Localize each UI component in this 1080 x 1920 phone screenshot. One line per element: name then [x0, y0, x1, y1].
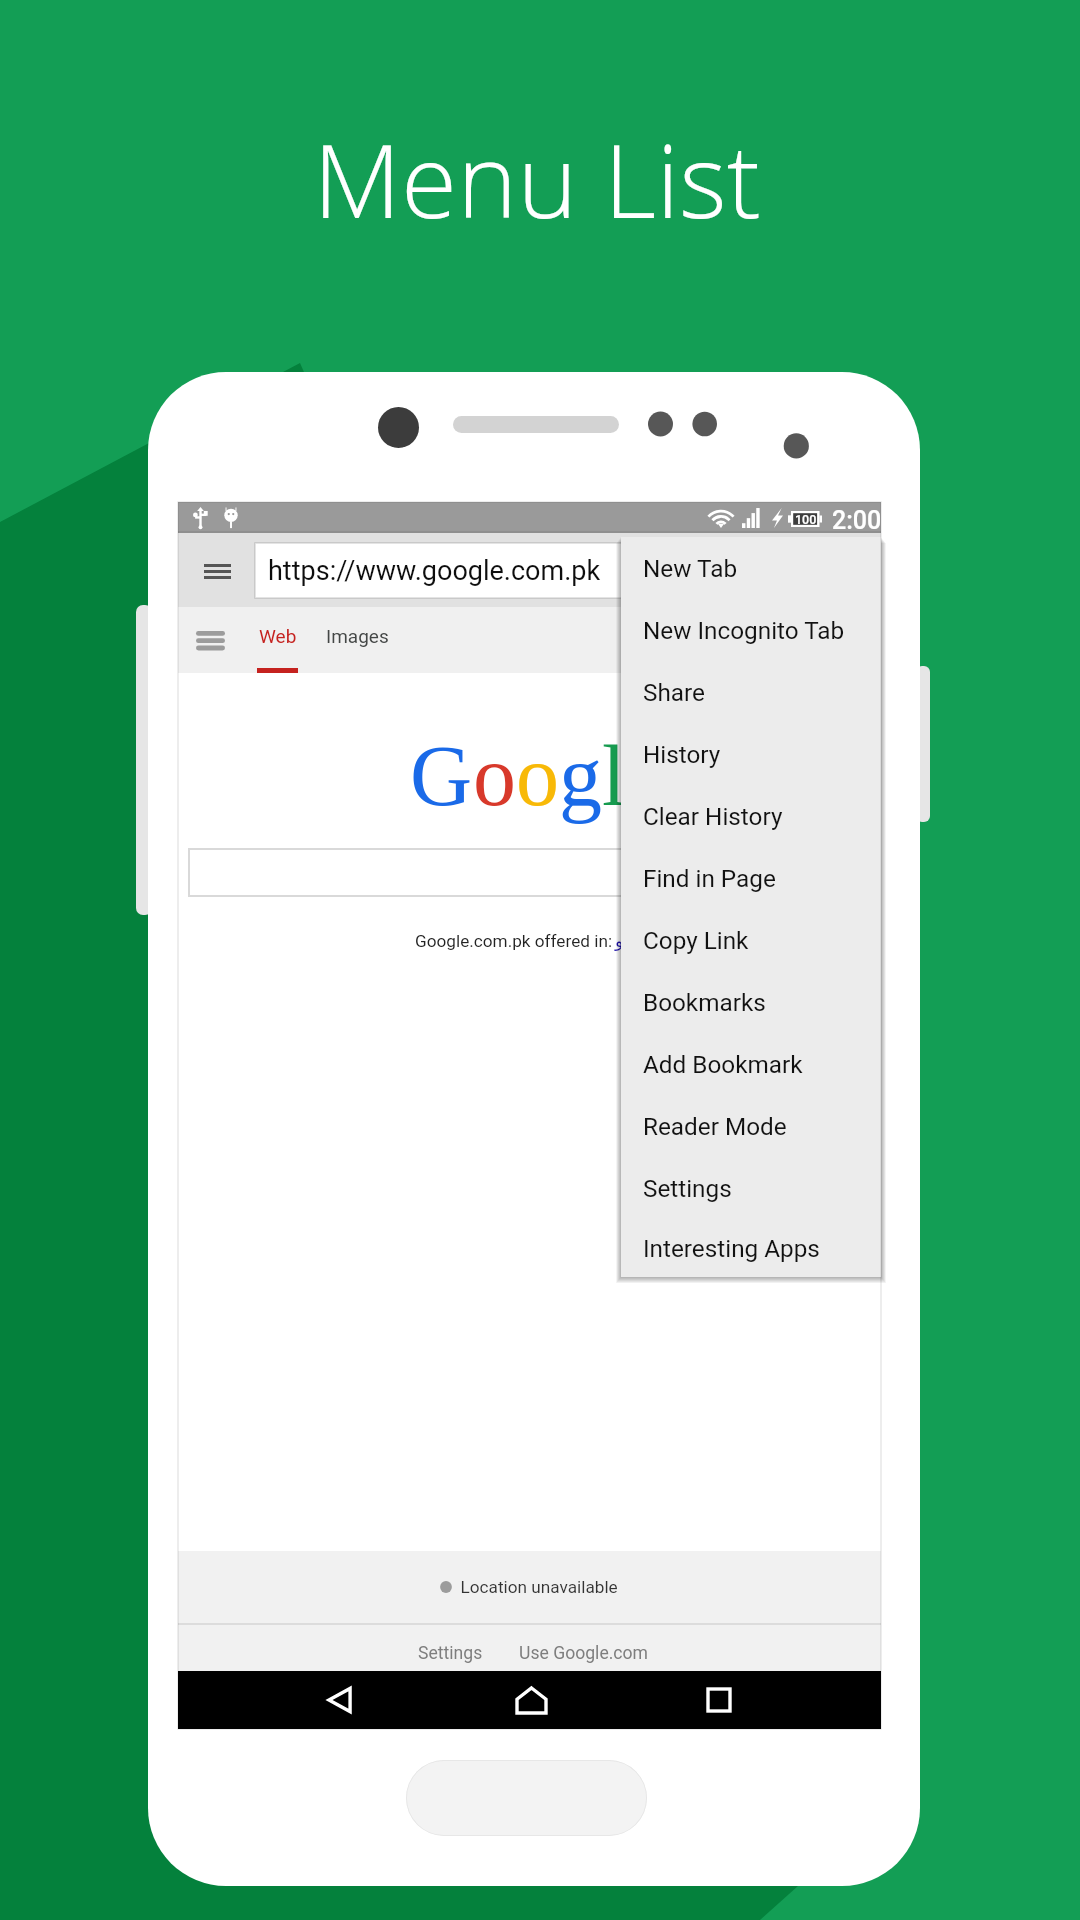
- staticText: g: [559, 728, 602, 823]
- button[interactable]: History: [621, 723, 881, 785]
- staticText: 2:00: [832, 506, 882, 535]
- button[interactable]: Settings: [621, 1157, 881, 1219]
- staticText: l: [602, 728, 626, 823]
- staticText: Menu List: [313, 109, 761, 248]
- staticText: Share: [643, 678, 705, 706]
- button[interactable]: Share: [621, 661, 881, 723]
- button[interactable]: Recent apps: [674, 1671, 764, 1729]
- staticText: Location unavailable: [452, 1577, 618, 1597]
- staticText: 100: [795, 512, 817, 527]
- staticText: History: [643, 740, 721, 768]
- button[interactable]: Reader Mode: [621, 1095, 881, 1157]
- staticText: اردو: [615, 931, 645, 951]
- staticText: https://www.google.com.pk: [268, 555, 601, 587]
- button[interactable]: Back: [295, 1671, 385, 1729]
- staticText: Settings: [418, 1643, 483, 1664]
- staticText: Images: [326, 625, 389, 647]
- staticText: o: [516, 728, 559, 823]
- button[interactable]: Images: [312, 607, 403, 673]
- button[interactable]: Clear History: [621, 785, 881, 847]
- staticText: Interesting Apps: [643, 1234, 820, 1262]
- button[interactable]: Google apps menu: [180, 617, 240, 663]
- button[interactable]: New Tab: [621, 537, 881, 599]
- staticText: e: [626, 728, 665, 823]
- staticText: G: [410, 728, 473, 823]
- staticText: Settings: [643, 1174, 732, 1202]
- button[interactable]: Interesting Apps: [621, 1219, 881, 1277]
- button[interactable]: New Incognito Tab: [621, 599, 881, 661]
- staticText: Use Google.com: [519, 1643, 649, 1664]
- staticText: Add Bookmark: [643, 1050, 803, 1078]
- staticText: New Incognito Tab: [643, 616, 845, 644]
- staticText: Reader Mode: [643, 1112, 787, 1140]
- staticText: Clear History: [643, 802, 783, 830]
- staticText: o: [473, 728, 516, 823]
- staticText: Google.com.pk offered in:: [415, 931, 613, 951]
- button[interactable]: https://www.google.com.pk: [255, 543, 815, 598]
- button[interactable]: Find in Page: [621, 847, 881, 909]
- button[interactable]: Home: [486, 1671, 576, 1729]
- staticText: Bookmarks: [643, 988, 766, 1016]
- staticText: New Tab: [643, 554, 738, 582]
- button[interactable]: Add Bookmark: [621, 1033, 881, 1095]
- staticText: Find in Page: [643, 864, 776, 892]
- button[interactable]: Copy Link: [621, 909, 881, 971]
- staticText: Web: [259, 625, 297, 647]
- button[interactable]: Web: [245, 607, 311, 673]
- button[interactable]: Open browser menu: [192, 548, 242, 594]
- button[interactable]: Bookmarks: [621, 971, 881, 1033]
- staticText: Copy Link: [643, 926, 749, 954]
